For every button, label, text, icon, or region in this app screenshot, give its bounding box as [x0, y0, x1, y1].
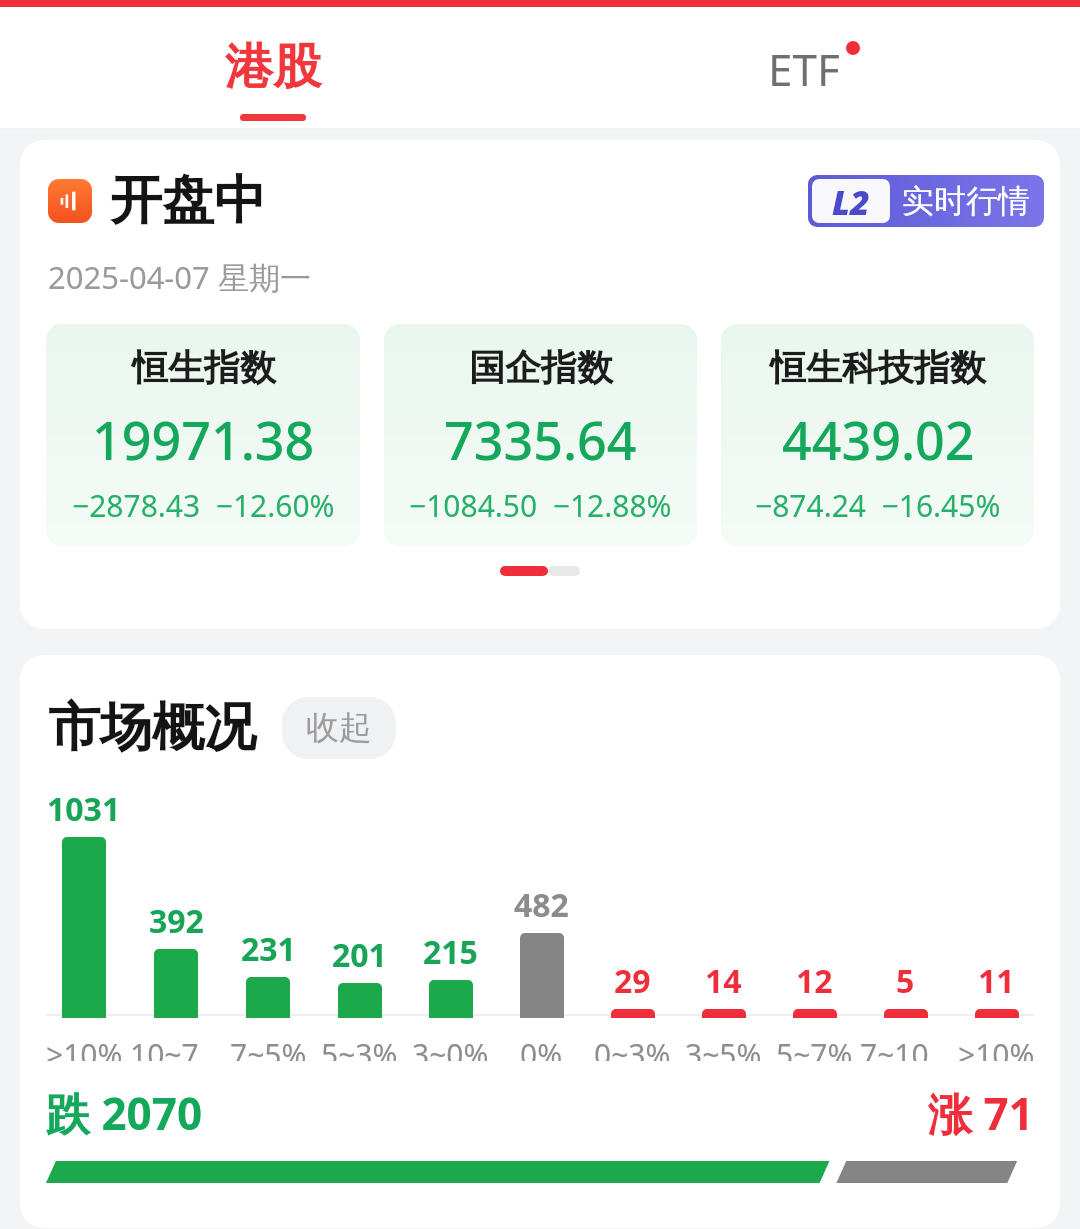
- staticText: 5: [896, 959, 915, 1003]
- button[interactable]: 恒生科技指数: [721, 324, 1034, 546]
- staticText: 2025-04-07 星期一: [48, 256, 311, 298]
- staticText: 0%: [520, 1034, 563, 1061]
- staticText: ETF: [768, 39, 840, 99]
- staticText: −1084.50 −12.88%: [409, 485, 672, 526]
- staticText: 国企指数: [469, 345, 613, 390]
- button[interactable]: 1031: [38, 781, 130, 1061]
- staticText: 7335.64: [444, 404, 637, 475]
- staticText: 恒生科技指数: [770, 345, 986, 390]
- staticText: 7~10%: [860, 1034, 951, 1061]
- staticText: −874.24 −16.45%: [755, 485, 1001, 526]
- staticText: 收起: [306, 707, 372, 749]
- staticText: >10%: [46, 1034, 123, 1061]
- staticText: 0~3%: [594, 1034, 671, 1061]
- button[interactable]: 29: [587, 781, 678, 1061]
- staticText: 12: [796, 959, 833, 1003]
- staticText: 恒生指数: [132, 345, 276, 390]
- button[interactable]: ETF: [700, 7, 930, 130]
- staticText: 市场概况: [48, 695, 256, 761]
- staticText: 跌 2070: [46, 1083, 203, 1143]
- button[interactable]: 231: [222, 781, 314, 1061]
- staticText: −2878.43 −12.60%: [72, 485, 335, 526]
- staticText: 215: [423, 930, 478, 974]
- staticText: 29: [614, 959, 651, 1003]
- button[interactable]: 201: [314, 781, 405, 1061]
- staticText: 19971.38: [92, 404, 315, 475]
- button[interactable]: 港股: [180, 7, 366, 130]
- staticText: 7~5%: [230, 1034, 307, 1061]
- staticText: 3~5%: [685, 1034, 762, 1061]
- staticText: >10%: [958, 1034, 1035, 1061]
- staticText: 201: [332, 933, 387, 977]
- staticText: L2: [832, 179, 870, 223]
- button[interactable]: 12: [769, 781, 860, 1061]
- staticText: 5~3%: [321, 1034, 398, 1061]
- staticText: 11: [978, 959, 1015, 1003]
- staticText: 港股: [225, 37, 321, 97]
- staticText: 实时行情: [902, 181, 1030, 221]
- staticText: 14: [705, 959, 742, 1003]
- button[interactable]: 482: [496, 781, 587, 1061]
- button[interactable]: 392: [130, 781, 222, 1061]
- staticText: 4439.02: [782, 404, 975, 475]
- staticText: 5~7%: [776, 1034, 853, 1061]
- button[interactable]: 11: [951, 781, 1042, 1061]
- staticText: 开盘中: [110, 168, 266, 234]
- staticText: 涨 71: [928, 1083, 1034, 1143]
- staticText: 10~7%: [130, 1034, 222, 1061]
- staticText: 231: [241, 927, 296, 971]
- button[interactable]: 收起: [282, 697, 396, 759]
- staticText: 1031: [47, 787, 121, 831]
- button[interactable]: 恒生指数: [46, 324, 360, 546]
- button[interactable]: L2: [808, 175, 1044, 227]
- button[interactable]: 215: [405, 781, 496, 1061]
- staticText: 482: [514, 883, 569, 927]
- button[interactable]: 14: [678, 781, 769, 1061]
- button[interactable]: 国企指数: [384, 324, 697, 546]
- staticText: 3~0%: [412, 1034, 489, 1061]
- staticText: 392: [149, 899, 204, 943]
- button[interactable]: 5: [860, 781, 951, 1061]
